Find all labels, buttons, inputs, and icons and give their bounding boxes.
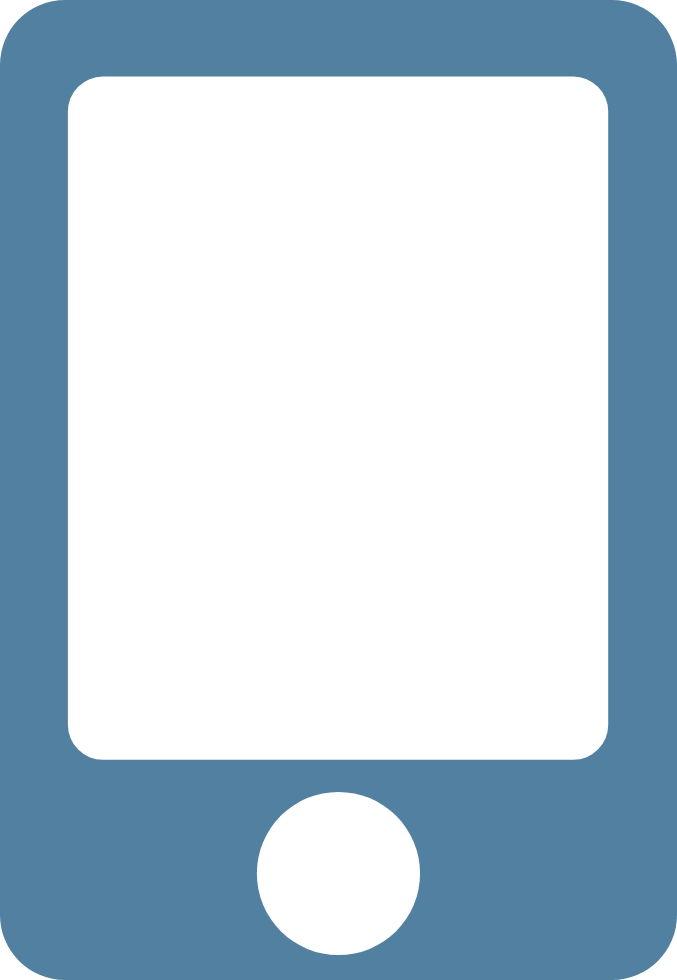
- button[interactable]: Tablet device illustration: [0, 0, 677, 980]
